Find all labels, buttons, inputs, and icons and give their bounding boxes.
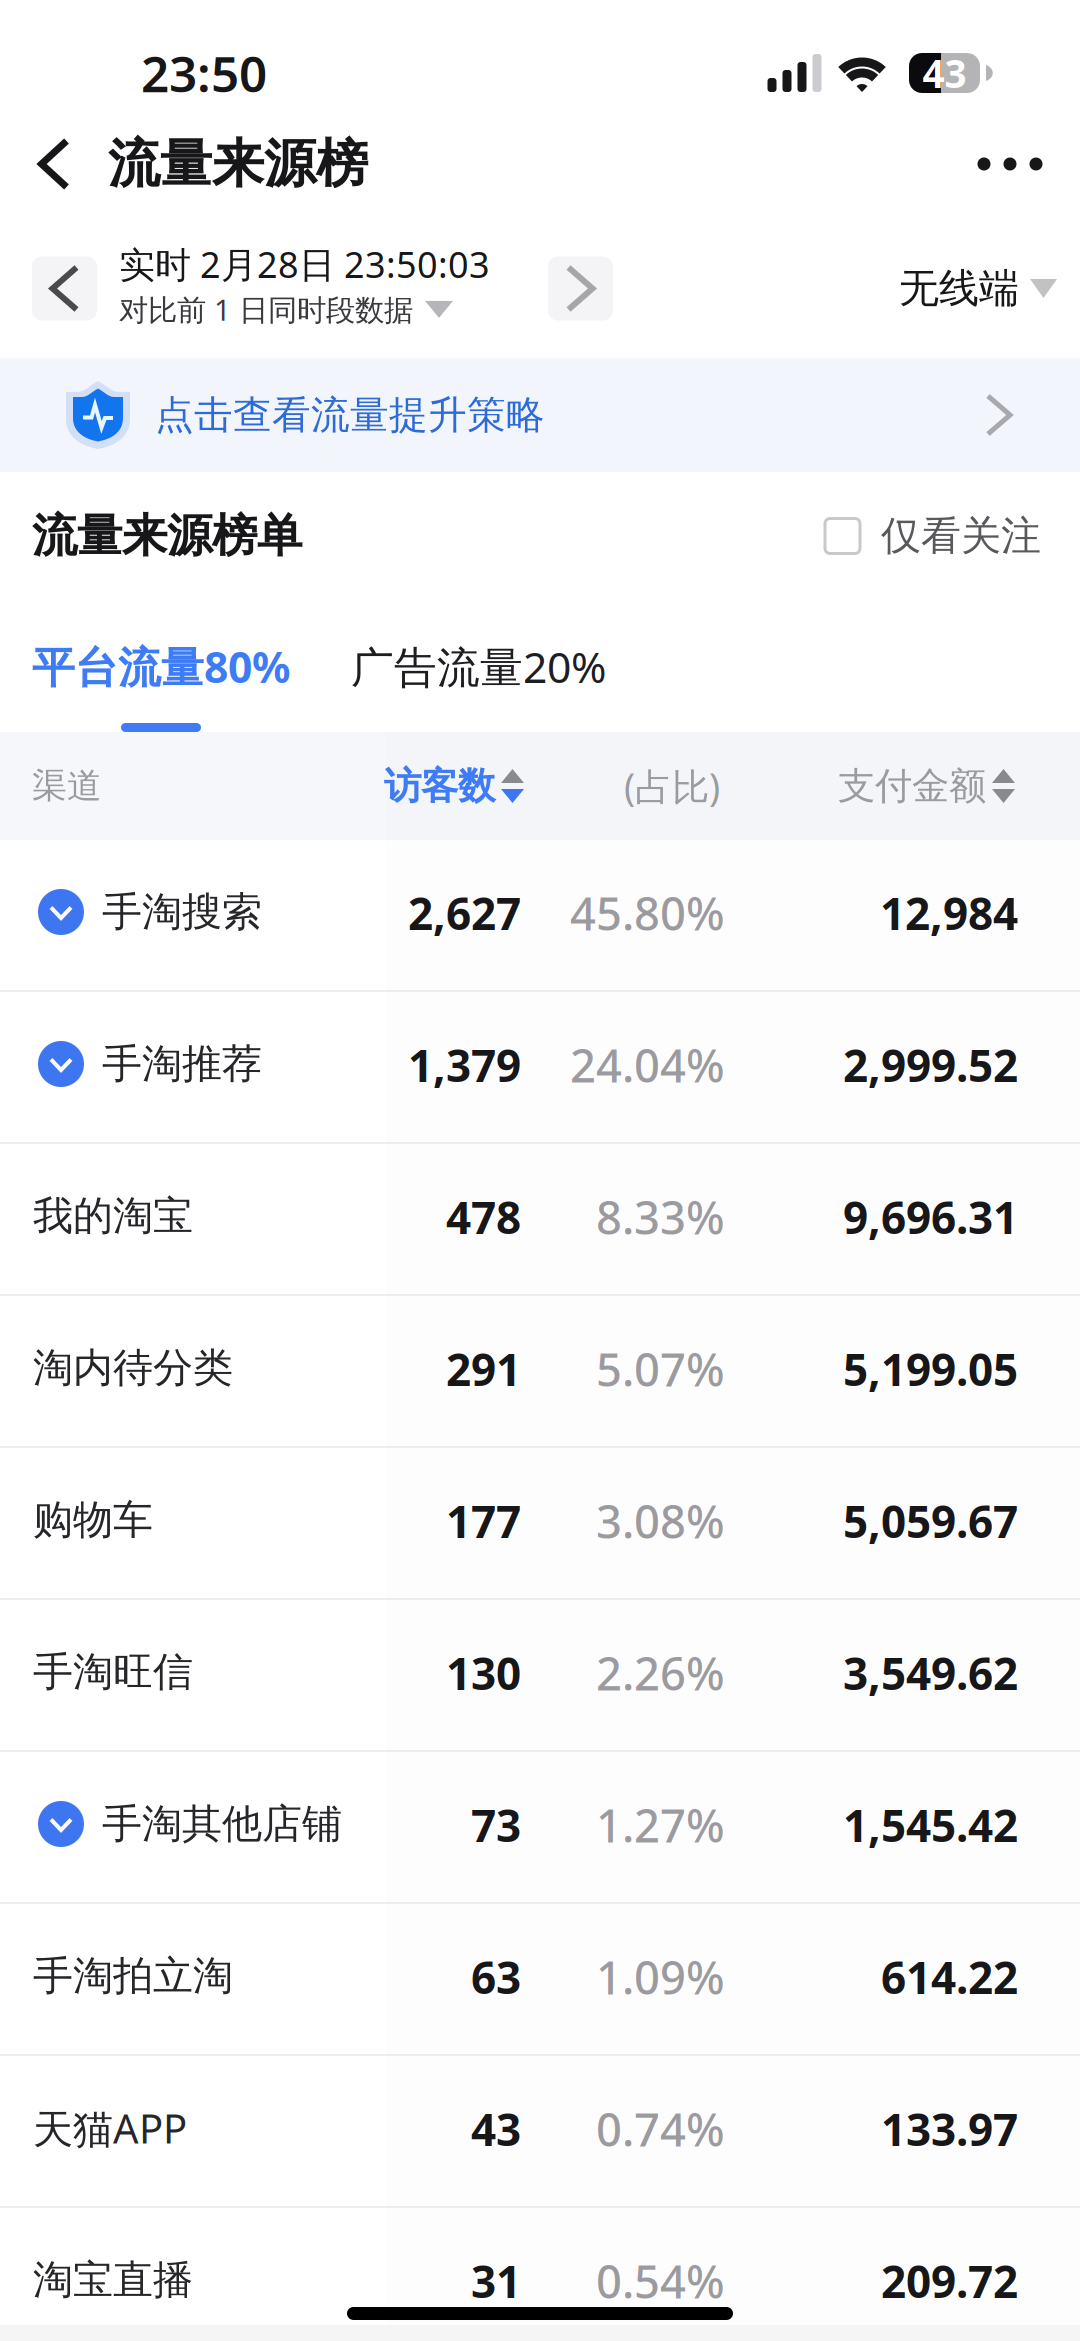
staticText: 对比前 1 日同时段数据 bbox=[119, 290, 413, 329]
button[interactable]: Previous period bbox=[32, 256, 97, 320]
staticText: 43 bbox=[922, 47, 966, 99]
staticText: 渠道 bbox=[32, 765, 102, 807]
button[interactable]: 手淘搜索 bbox=[0, 840, 1080, 992]
staticText: 平台流量80% bbox=[32, 638, 290, 695]
staticText: 淘宝直播 bbox=[33, 2255, 193, 2304]
staticText: 手淘拍立淘 bbox=[33, 1951, 233, 2000]
staticText: 1.09% bbox=[596, 1947, 725, 2007]
staticText: 5.07% bbox=[596, 1339, 725, 1399]
button[interactable]: More options bbox=[940, 99, 1080, 229]
staticText: 1,379 bbox=[408, 1036, 521, 1094]
staticText: 无线端 bbox=[899, 264, 1019, 313]
staticText: 209.72 bbox=[881, 2252, 1018, 2310]
staticText: 12,984 bbox=[880, 884, 1018, 942]
staticText: 2,999.52 bbox=[843, 1036, 1018, 1094]
staticText: 63 bbox=[471, 1948, 521, 2006]
staticText: 手淘旺信 bbox=[33, 1647, 193, 1696]
staticText: 天猫APP bbox=[33, 2101, 187, 2154]
button[interactable]: 我的淘宝 bbox=[0, 1144, 1080, 1296]
button[interactable]: 购物车 bbox=[0, 1448, 1080, 1600]
button[interactable]: 手淘推荐 bbox=[0, 992, 1080, 1144]
staticText: 31 bbox=[471, 2252, 521, 2310]
staticText: 0.74% bbox=[596, 2099, 725, 2159]
button[interactable]: 无线端 bbox=[899, 243, 1080, 343]
staticText: 3.08% bbox=[596, 1491, 725, 1551]
staticText: 73 bbox=[471, 1796, 521, 1854]
staticText: 淘内待分类 bbox=[33, 1343, 233, 1392]
staticText: 购物车 bbox=[33, 1495, 153, 1544]
button[interactable]: 手淘旺信 bbox=[0, 1600, 1080, 1752]
staticText: 2.26% bbox=[596, 1643, 725, 1703]
button[interactable]: 天猫APP bbox=[0, 2056, 1080, 2208]
staticText: 24.04% bbox=[570, 1035, 725, 1095]
staticText: 手淘推荐 bbox=[102, 1039, 262, 1088]
staticText: 133.97 bbox=[881, 2100, 1018, 2158]
button[interactable]: 淘内待分类 bbox=[0, 1296, 1080, 1448]
staticText: 手淘搜索 bbox=[102, 887, 262, 936]
staticText: 5,199.05 bbox=[843, 1340, 1018, 1398]
staticText: 我的淘宝 bbox=[33, 1191, 193, 1240]
button[interactable]: Next period bbox=[548, 256, 613, 320]
button[interactable]: 访客数 bbox=[0, 732, 524, 840]
staticText: 仅看关注 bbox=[881, 511, 1041, 560]
staticText: 9,696.31 bbox=[843, 1188, 1018, 1246]
staticText: 广告流量20% bbox=[351, 638, 606, 695]
button[interactable]: 广告流量20% bbox=[290, 600, 606, 732]
staticText: 5,059.67 bbox=[843, 1492, 1018, 1550]
staticText: 45.80% bbox=[570, 883, 725, 943]
staticText: 2,627 bbox=[408, 884, 521, 942]
staticText: 291 bbox=[446, 1340, 521, 1398]
button[interactable]: 手淘拍立淘 bbox=[0, 1904, 1080, 2056]
staticText: 支付金额 bbox=[838, 763, 986, 809]
staticText: 流量来源榜 bbox=[108, 132, 368, 196]
button[interactable]: Back bbox=[0, 99, 108, 229]
staticText: 23:50 bbox=[141, 40, 267, 106]
staticText: (占比) bbox=[624, 761, 720, 811]
staticText: 访客数 bbox=[384, 763, 495, 809]
staticText: 流量来源榜单 bbox=[32, 508, 302, 564]
staticText: 实时 2月28日 23:50:03 bbox=[119, 240, 490, 288]
staticText: 614.22 bbox=[881, 1948, 1018, 2006]
staticText: 1.27% bbox=[596, 1795, 725, 1855]
button[interactable]: 平台流量80% bbox=[0, 600, 290, 732]
staticText: 8.33% bbox=[596, 1187, 725, 1247]
button[interactable]: 淘宝直播 bbox=[0, 2208, 1080, 2341]
button[interactable]: 点击查看流量提升策略 bbox=[0, 358, 1080, 472]
staticText: 130 bbox=[446, 1644, 521, 1702]
button[interactable]: 手淘其他店铺 bbox=[0, 1752, 1080, 1904]
staticText: 点击查看流量提升策略 bbox=[155, 391, 545, 439]
staticText: 177 bbox=[446, 1492, 521, 1550]
button[interactable]: 支付金额 bbox=[720, 732, 1015, 840]
staticText: 478 bbox=[446, 1188, 521, 1246]
staticText: 3,549.62 bbox=[843, 1644, 1018, 1702]
staticText: 0.54% bbox=[596, 2251, 725, 2311]
staticText: 1,545.42 bbox=[843, 1796, 1018, 1854]
staticText: 43 bbox=[471, 2100, 521, 2158]
staticText: 手淘其他店铺 bbox=[102, 1799, 342, 1848]
button[interactable]: 仅看关注 bbox=[825, 486, 1080, 586]
